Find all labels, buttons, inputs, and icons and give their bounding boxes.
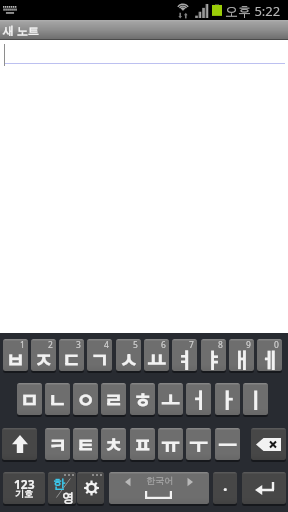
button[interactable]: Space [109,472,209,504]
button[interactable]: ㅇ [73,383,98,415]
staticText: 오후 5:22 [225,2,281,20]
button[interactable]: ㅗ [158,383,183,415]
button[interactable]: ㅔ [257,339,282,371]
staticText: ㅇ [76,384,96,414]
button[interactable]: ㅕ [172,339,197,371]
button[interactable]: Backspace [251,428,286,460]
button[interactable]: ㅣ [243,383,268,415]
button[interactable]: ㅐ [229,339,254,371]
staticText: 8 [218,339,223,351]
button[interactable]: ㅜ [186,428,211,460]
button[interactable]: ㅅ [116,339,141,371]
staticText: ㅗ [161,384,181,414]
button[interactable]: Period [213,472,237,504]
button[interactable]: ㅑ [201,339,226,371]
button[interactable]: ㅓ [186,383,211,415]
staticText: ㅋ [48,429,68,459]
button[interactable]: ㄷ [59,339,84,371]
staticText: ㄴ [48,384,68,414]
button[interactable]: ㅡ [215,428,240,460]
button[interactable]: ㄴ [45,383,70,415]
button[interactable]: ㅍ [130,428,155,460]
staticText: ㅜ [189,429,209,459]
staticText: 6 [161,339,166,351]
staticText: ㅊ [104,429,124,459]
staticText: 영 [62,490,74,504]
staticText: ㅑ [204,344,224,371]
staticText: . [223,474,228,496]
button[interactable]: Symbols [3,472,45,504]
button[interactable]: ㄱ [87,339,112,371]
staticText: 한국어 [146,475,173,486]
staticText: 1 [20,339,25,351]
staticText: ㄷ [62,344,82,371]
button[interactable]: Language toggle [48,472,76,504]
staticText: ㅂ [6,344,26,371]
button[interactable]: ㅁ [17,383,42,415]
staticText: ㅣ [246,384,266,414]
button[interactable]: ㅠ [158,428,183,460]
staticText: 한 [53,476,65,491]
button[interactable]: ㅊ [101,428,126,460]
staticText: ㅔ [260,344,280,371]
button[interactable]: ㅋ [45,428,70,460]
staticText: ㄹ [104,384,124,414]
button[interactable]: ㅈ [31,339,56,371]
staticText: ㅐ [232,344,252,371]
staticText: ㅈ [34,344,54,371]
staticText: 9 [246,339,251,351]
button[interactable]: Keyboard settings [77,472,104,504]
staticText: ㅏ [218,384,238,414]
staticText: ㅍ [133,429,153,459]
staticText: ㅁ [20,384,40,414]
button[interactable]: ㅌ [73,428,98,460]
staticText: 4 [104,339,109,351]
button[interactable]: ㅂ [3,339,28,371]
staticText: ㅡ [218,429,238,459]
staticText: 2 [48,339,53,351]
staticText: ㅌ [76,429,96,459]
staticText: 5 [133,339,138,351]
button[interactable]: Shift [2,428,37,460]
staticText: 123 [14,476,35,492]
button[interactable]: ㄹ [101,383,126,415]
staticText: ㅕ [175,344,195,371]
staticText: 0 [274,339,279,351]
staticText: ㅛ [147,344,167,371]
staticText: ㅓ [189,384,209,414]
button[interactable]: ㅛ [144,339,169,371]
button[interactable]: ㅎ [130,383,155,415]
button[interactable]: ㅏ [215,383,240,415]
staticText: ㅅ [119,344,139,371]
button[interactable]: Enter [242,472,286,504]
staticText: 새 노트 [3,23,39,38]
staticText: ㅎ [133,384,153,414]
staticText: 기호 [15,488,33,499]
staticText: 3 [76,339,81,351]
staticText: ㅠ [161,429,181,459]
staticText: 7 [189,339,194,351]
staticText: ㄱ [90,344,110,371]
